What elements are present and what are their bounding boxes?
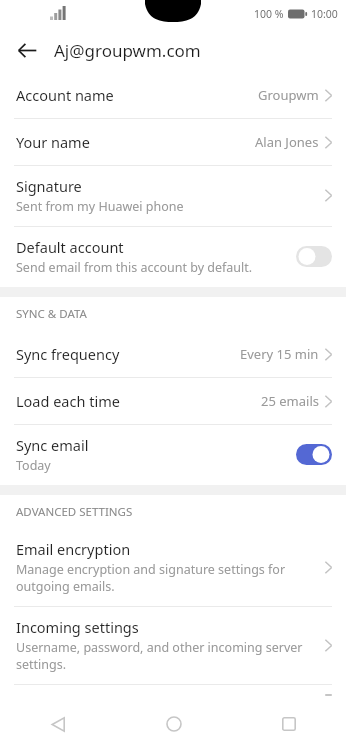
button[interactable]: Load each time <box>0 378 346 424</box>
staticText: Today <box>16 457 51 474</box>
staticText: Manage encryption and signature settings… <box>16 561 286 595</box>
button[interactable]: Sync email <box>0 425 346 485</box>
staticText: Default account <box>16 237 124 257</box>
staticText: Sync frequency <box>16 344 240 364</box>
staticText: Aj@groupwm.com <box>54 39 201 62</box>
button[interactable]: On <box>296 444 332 465</box>
button[interactable]: Home <box>116 706 231 742</box>
staticText: Alan Jones <box>255 133 319 151</box>
button[interactable]: Recents <box>231 706 346 742</box>
staticText: ADVANCED SETTINGS <box>16 504 133 520</box>
staticText: Incoming settings <box>16 617 139 637</box>
staticText: Username, password, and other incoming s… <box>16 639 303 673</box>
staticText: Sent from my Huawei phone <box>16 198 184 215</box>
button[interactable]: Signature <box>0 166 346 226</box>
staticText: Account name <box>16 85 258 105</box>
button[interactable]: Default account <box>0 227 346 287</box>
staticText: Sync email <box>16 435 89 455</box>
button[interactable]: Back <box>0 706 116 742</box>
staticText: Send email from this account by default. <box>16 259 253 276</box>
button[interactable]: Off <box>296 246 332 267</box>
staticText: SYNC & DATA <box>16 306 87 322</box>
button[interactable]: Email encryption <box>0 529 346 606</box>
staticText: Email encryption <box>16 539 131 559</box>
staticText: Signature <box>16 176 82 196</box>
staticText: Every 15 min <box>240 345 319 363</box>
button[interactable]: Sync frequency <box>0 331 346 377</box>
staticText: 10:00 <box>311 7 338 21</box>
staticText: Load each time <box>16 391 261 411</box>
staticText: Your name <box>16 132 255 152</box>
staticText: 100 % <box>254 7 284 21</box>
staticText: 25 emails <box>261 392 319 410</box>
staticText: Groupwm <box>258 86 319 104</box>
button[interactable]: Your name <box>0 119 346 165</box>
button[interactable]: Incoming settings <box>0 607 346 684</box>
button[interactable]: Back <box>8 31 46 69</box>
button[interactable]: Account name <box>0 72 346 118</box>
